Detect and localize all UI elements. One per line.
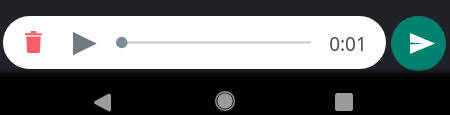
button[interactable]: Playback position <box>116 35 310 50</box>
button[interactable]: Recent apps <box>321 77 366 115</box>
button[interactable]: Back <box>80 77 125 115</box>
button[interactable]: Send <box>391 16 446 71</box>
button[interactable]: Delete recording <box>16 25 50 59</box>
button[interactable]: Play <box>68 26 102 60</box>
button[interactable]: Home <box>202 77 247 115</box>
staticText: 0:01 <box>329 31 367 56</box>
